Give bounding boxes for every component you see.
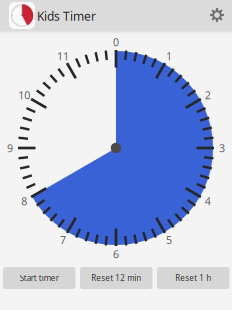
staticText: 7 — [60, 233, 66, 247]
staticText: 0 — [113, 35, 119, 49]
button[interactable]: Start timer — [3, 267, 75, 289]
staticText: 4 — [205, 194, 211, 208]
button[interactable]: Reset 12 min — [80, 267, 152, 289]
staticText: 10 — [18, 88, 30, 102]
staticText: 3 — [219, 141, 225, 155]
button[interactable]: Reset 1 h — [157, 267, 229, 289]
staticText: 5 — [166, 233, 172, 247]
staticText: Start timer — [20, 273, 59, 283]
button[interactable]: Settings — [202, 0, 232, 30]
staticText: Reset 1 h — [175, 273, 211, 283]
staticText: 9 — [7, 141, 13, 155]
staticText: Kids Timer — [37, 8, 96, 24]
staticText: 2 — [205, 88, 211, 102]
staticText: 11 — [57, 49, 69, 63]
staticText: 8 — [21, 194, 27, 208]
staticText: 1 — [166, 49, 172, 63]
staticText: 6 — [113, 247, 119, 261]
staticText: Reset 12 min — [91, 273, 141, 283]
